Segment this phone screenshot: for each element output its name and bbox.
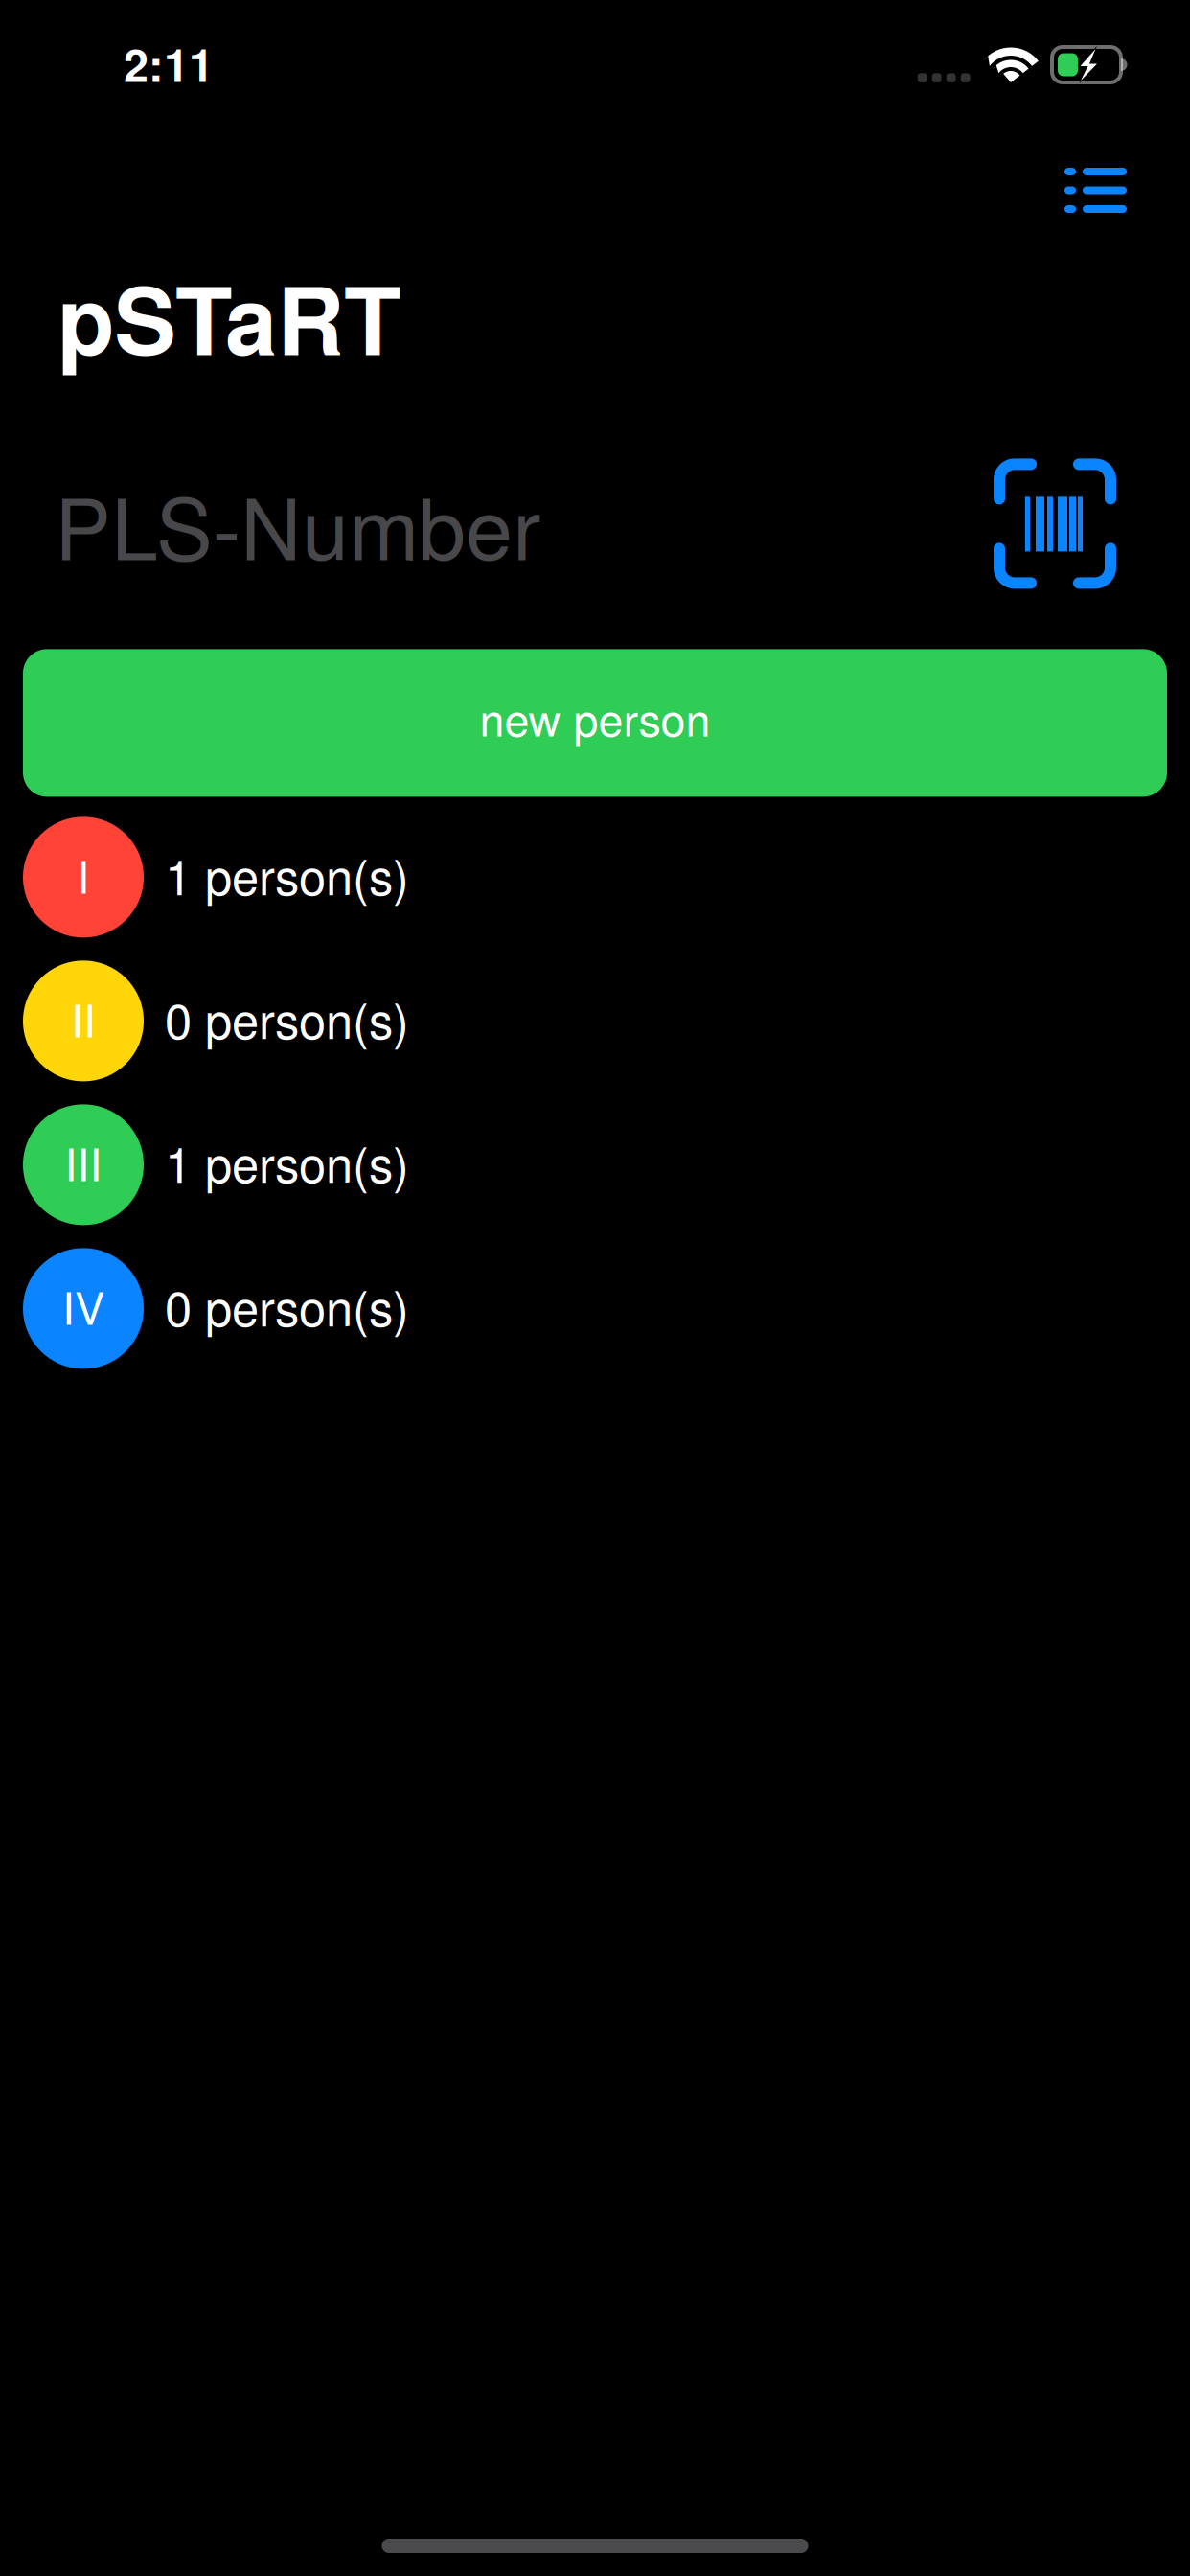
- staticText: 0 person(s): [165, 1271, 409, 1340]
- button[interactable]: Scan barcode: [994, 458, 1116, 589]
- button[interactable]: II: [23, 949, 1167, 1093]
- staticText: new person: [480, 685, 710, 749]
- button[interactable]: new person: [23, 649, 1167, 797]
- staticText: II: [71, 986, 96, 1050]
- staticText: 1 person(s): [165, 1127, 409, 1197]
- button[interactable]: III: [23, 1093, 1167, 1237]
- staticText: I: [77, 842, 90, 906]
- staticText: PLS-Number: [55, 463, 540, 584]
- button[interactable]: List: [1049, 154, 1142, 226]
- staticText: 0 person(s): [165, 983, 409, 1053]
- staticText: pSTaRT: [57, 250, 400, 384]
- staticText: 2:11: [124, 32, 214, 96]
- button[interactable]: I: [23, 805, 1167, 949]
- staticText: III: [65, 1130, 102, 1194]
- staticText: 1 person(s): [165, 840, 409, 909]
- staticText: IV: [62, 1274, 104, 1338]
- button[interactable]: IV: [23, 1237, 1167, 1380]
